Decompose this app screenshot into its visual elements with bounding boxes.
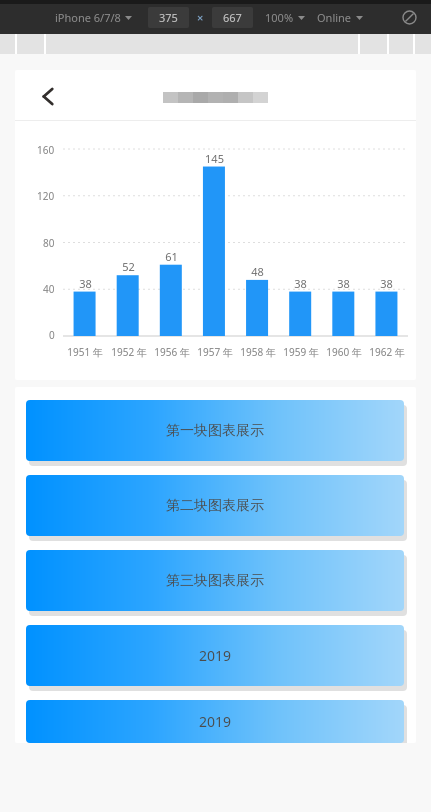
staticText: 1951 年: [67, 345, 103, 359]
staticText: 38: [294, 276, 307, 291]
staticText: 1959 年: [283, 345, 319, 359]
staticText: 100%: [265, 10, 294, 25]
staticText: 1956 年: [154, 345, 190, 359]
staticText: 145: [205, 151, 224, 166]
staticText: 160: [37, 143, 55, 157]
staticText: 38: [380, 276, 393, 291]
button[interactable]: 667: [212, 7, 253, 28]
staticText: 第三块图表展示: [166, 572, 264, 590]
staticText: 38: [79, 276, 92, 291]
staticText: 0: [49, 328, 55, 342]
staticText: 80: [43, 236, 55, 250]
staticText: 1957 年: [197, 345, 233, 359]
staticText: 375: [159, 10, 178, 25]
staticText: 1952 年: [111, 345, 147, 359]
staticText: 1960 年: [326, 345, 362, 359]
staticText: 1962 年: [369, 345, 405, 359]
staticText: 120: [37, 189, 55, 203]
staticText: 61: [165, 249, 178, 264]
staticText: 48: [251, 264, 264, 279]
button[interactable]: Online: [317, 6, 363, 29]
staticText: 38: [337, 276, 350, 291]
staticText: iPhone 6/7/8: [55, 10, 121, 25]
button[interactable]: 2019: [26, 700, 404, 743]
staticText: Online: [317, 10, 352, 25]
staticText: 667: [223, 10, 242, 25]
staticText: 2019: [199, 646, 232, 665]
button[interactable]: iPhone 6/7/8: [55, 6, 132, 29]
staticText: 1958 年: [240, 345, 276, 359]
button[interactable]: 100%: [265, 6, 305, 29]
button[interactable]: 第三块图表展示: [26, 550, 404, 611]
staticText: 第二块图表展示: [166, 497, 264, 515]
button[interactable]: Back: [32, 80, 64, 112]
button[interactable]: 375: [148, 7, 189, 28]
button[interactable]: 第二块图表展示: [26, 475, 404, 536]
staticText: 52: [122, 259, 135, 274]
staticText: 40: [43, 282, 55, 296]
staticText: ×: [197, 10, 204, 25]
button[interactable]: 第一块图表展示: [26, 400, 404, 461]
button[interactable]: Throttling: [397, 5, 421, 29]
staticText: 2019: [199, 712, 232, 731]
staticText: 第一块图表展示: [166, 422, 264, 440]
button[interactable]: 2019: [26, 625, 404, 686]
